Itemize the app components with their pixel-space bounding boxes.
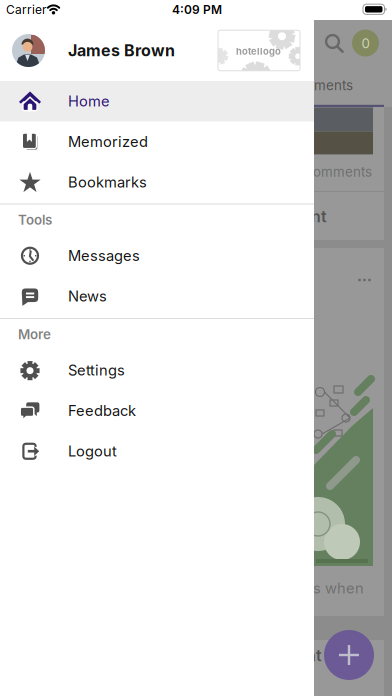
button[interactable]: Bookmarks bbox=[0, 162, 314, 202]
staticText: ews when bbox=[293, 579, 364, 597]
staticText: Memorized bbox=[68, 133, 148, 150]
button[interactable]: Memorized bbox=[0, 121, 314, 162]
staticText: Tools bbox=[18, 212, 52, 228]
staticText: Bookmarks bbox=[68, 174, 147, 191]
button[interactable]: Messages bbox=[0, 235, 314, 276]
staticText: Comment bbox=[252, 207, 327, 226]
staticText: 0 bbox=[361, 35, 369, 51]
button[interactable]: News bbox=[0, 276, 314, 316]
staticText: Home bbox=[68, 93, 110, 110]
staticText: Logout bbox=[68, 443, 117, 460]
staticText: Feedback bbox=[68, 402, 136, 419]
button[interactable]: Profile bbox=[0, 20, 314, 81]
staticText: 4:09 PM bbox=[172, 2, 222, 17]
button[interactable]: Home bbox=[0, 81, 314, 121]
button[interactable]: Logout bbox=[0, 431, 314, 471]
staticText: News bbox=[68, 288, 107, 305]
staticText: Comment bbox=[247, 646, 322, 665]
staticText: Comments bbox=[284, 77, 353, 93]
staticText: More bbox=[18, 327, 51, 342]
button[interactable]: Settings bbox=[0, 350, 314, 390]
button[interactable]: Feedback bbox=[0, 390, 314, 431]
button[interactable]: Add bbox=[324, 630, 374, 680]
staticText: Messages bbox=[68, 247, 140, 264]
staticText: James Brown bbox=[68, 41, 175, 60]
staticText: 1 comments bbox=[296, 164, 372, 180]
staticText: hotellogo bbox=[236, 46, 281, 57]
staticText: Settings bbox=[68, 362, 125, 379]
staticText: Carrier bbox=[6, 2, 47, 17]
